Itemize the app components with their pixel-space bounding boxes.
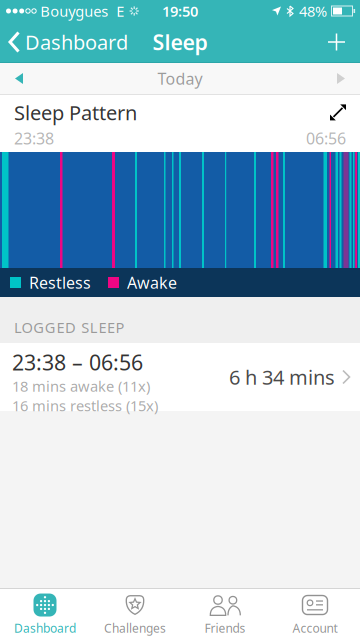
staticText: 18 mins awake (11x) [12,376,150,396]
staticText: 6 h 34 mins [229,364,335,390]
staticText: 16 mins restless (15x) [12,396,158,415]
staticText: Sleep Pattern [14,99,137,126]
staticText: 23:38 [14,128,54,149]
button[interactable]: Account [270,589,360,639]
staticText: 48% [299,1,327,21]
button[interactable]: 23:38 – 06:56 [0,343,360,411]
staticText: Restless [29,272,91,293]
button[interactable]: Add sleep log [328,33,360,50]
button[interactable]: Next day [337,73,360,84]
staticText: Sleep [152,28,207,56]
staticText: Awake [127,272,177,293]
staticText: Challenges [104,620,166,636]
button[interactable]: Dashboard [0,29,128,55]
staticText: 06:56 [306,128,346,149]
button[interactable]: Previous day [0,73,23,84]
staticText: 19:50 [162,1,198,21]
staticText: Dashboard [14,620,76,636]
button[interactable]: Dashboard [0,589,90,639]
staticText: Bouygues [40,1,108,21]
button[interactable]: Challenges [90,589,180,639]
button[interactable]: Expand sleep pattern [330,104,346,120]
staticText: 23:38 – 06:56 [12,348,143,376]
staticText: Account [292,620,337,636]
staticText: Dashboard [25,29,128,55]
staticText: E [116,1,124,21]
button[interactable]: Friends [180,589,270,639]
staticText: Today [157,68,202,89]
staticText: LOGGED SLEEP [14,317,125,337]
staticText: Friends [204,620,245,636]
